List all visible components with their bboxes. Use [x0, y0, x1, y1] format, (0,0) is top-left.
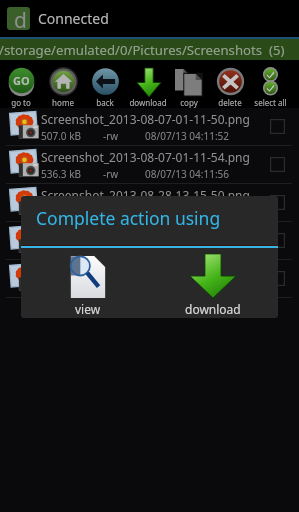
- button[interactable]: home: [42, 60, 84, 108]
- staticText: Screenshot_2013-08-28-13-15-50.png: [41, 187, 250, 203]
- button[interactable]: delete: [209, 60, 251, 108]
- staticText: 08/07/13 04:11:52: [145, 129, 230, 143]
- button[interactable]: view: [38, 252, 138, 317]
- staticText: -rw: [103, 167, 119, 181]
- staticText: -rw: [103, 281, 119, 295]
- staticText: home: [52, 97, 74, 108]
- button[interactable]: Screenshot_2013-08-28-13-15-50.png: [0, 184, 299, 222]
- staticText: 390.4 kB: [41, 281, 81, 295]
- staticText: Screenshot_2013-08-28-13-16-02.png: [41, 225, 250, 241]
- staticText: d: [14, 7, 27, 29]
- button[interactable]: Screenshot_2013-08-28-13-16-02.png: [0, 222, 299, 260]
- staticText: 536.3 kB: [41, 167, 81, 181]
- staticText: Screenshot_2013-09-01-09-22-11.png: [41, 263, 250, 279]
- button[interactable]: go to: [0, 60, 42, 108]
- staticText: Screenshot_2013-08-07-01-11-50.png: [41, 111, 250, 127]
- staticText: copy: [180, 97, 198, 108]
- button[interactable]: Screenshot_2013-09-01-09-22-11.png: [0, 260, 299, 298]
- staticText: Screenshot_2013-08-07-01-11-54.png: [41, 149, 250, 165]
- staticText: 08/28/13 13:16:04: [145, 243, 230, 257]
- staticText: view: [75, 301, 101, 317]
- staticText: delete: [218, 97, 242, 108]
- staticText: 08/28/13 13:15:52: [145, 205, 230, 219]
- staticText: /storage/emulated/0/Pictures/Screenshots…: [0, 41, 285, 59]
- staticText: download: [185, 301, 241, 317]
- button[interactable]: download: [127, 60, 169, 108]
- staticText: -rw: [103, 243, 119, 257]
- staticText: 507.0 kB: [41, 129, 81, 143]
- button[interactable]: copy: [168, 60, 210, 108]
- staticText: Complete action using: [36, 206, 221, 230]
- staticText: -rw: [103, 205, 119, 219]
- staticText: go to: [11, 97, 31, 108]
- button[interactable]: download: [163, 252, 263, 317]
- staticText: 480.9 kB: [41, 205, 81, 219]
- staticText: 402.1 kB: [41, 243, 81, 257]
- button[interactable]: Screenshot_2013-08-07-01-11-54.png: [0, 146, 299, 184]
- staticText: back: [96, 97, 114, 108]
- staticText: select all: [254, 97, 287, 108]
- staticText: GO: [13, 73, 30, 88]
- staticText: 08/07/13 04:11:56: [145, 167, 230, 181]
- button[interactable]: select all: [249, 60, 291, 108]
- staticText: 09/01/13 09:22:13: [145, 281, 230, 295]
- staticText: Connected: [38, 9, 109, 28]
- staticText: download: [129, 97, 167, 108]
- button[interactable]: back: [84, 60, 126, 108]
- staticText: -rw: [103, 129, 119, 143]
- button[interactable]: Screenshot_2013-08-07-01-11-50.png: [0, 108, 299, 146]
